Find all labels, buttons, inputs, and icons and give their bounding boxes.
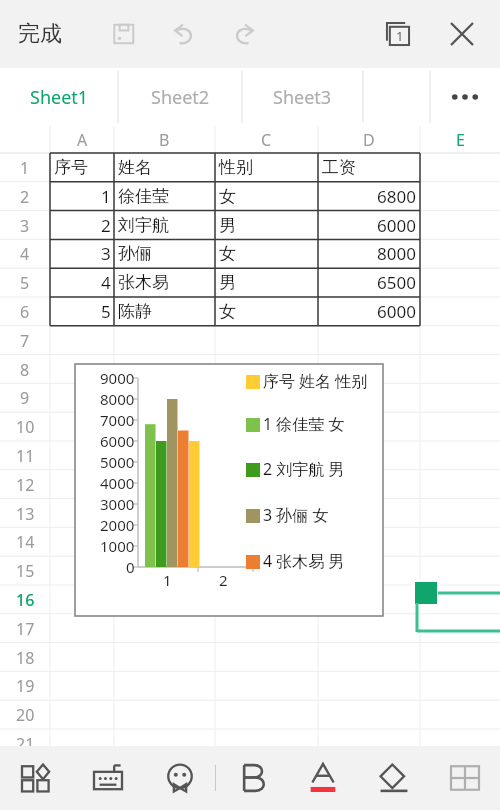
staticText: 工资 [322, 157, 356, 178]
staticText: 13 [16, 503, 35, 525]
staticText: 2000 [100, 515, 135, 535]
button[interactable]: 6500 [318, 268, 416, 297]
staticText: 0 [126, 557, 135, 577]
staticText: 5 [101, 300, 111, 323]
button[interactable]: 男 [219, 268, 316, 297]
staticText: 11 [16, 445, 35, 467]
button[interactable]: 工资 [322, 153, 418, 182]
button[interactable]: Font color [287, 746, 358, 810]
staticText: 完成 [18, 20, 62, 48]
button[interactable]: 女 [219, 239, 316, 268]
staticText: 男 [219, 272, 236, 293]
button[interactable]: 6800 [318, 182, 416, 211]
button[interactable]: Undo [162, 12, 206, 56]
button[interactable]: Keyboard [72, 746, 144, 810]
staticText: 女 [219, 186, 236, 207]
staticText: 20 [16, 704, 35, 726]
staticText: 6000 [377, 214, 416, 237]
staticText: 7 [20, 330, 30, 352]
staticText: 5000 [100, 452, 135, 472]
staticText: 18 [16, 647, 35, 669]
staticText: A [77, 129, 88, 151]
staticText: 1 徐佳莹 女 [263, 413, 345, 435]
staticText: C [261, 129, 272, 151]
staticText: 19 [16, 675, 35, 697]
staticText: 4 [101, 271, 111, 294]
staticText: Sheet1 [30, 85, 89, 110]
button[interactable]: 6000 [318, 211, 416, 240]
button[interactable]: Cell styles [0, 746, 72, 810]
staticText: 序号 [54, 157, 88, 178]
button[interactable]: Save [102, 12, 146, 56]
staticText: 5 [20, 272, 30, 294]
staticText: 10 [16, 416, 35, 438]
staticText: 8000 [100, 389, 135, 409]
button[interactable]: 张木易 [118, 268, 213, 297]
staticText: 6000 [377, 300, 416, 323]
staticText: Sheet3 [273, 85, 332, 110]
staticText: 4 [20, 243, 30, 265]
staticText: D [363, 129, 375, 151]
button[interactable]: 1 [50, 182, 111, 211]
staticText: 陈静 [118, 301, 152, 322]
button[interactable]: Sheet2 [118, 68, 242, 126]
staticText: 3 孙俪 女 [263, 504, 329, 526]
button[interactable]: 序号 [54, 153, 112, 182]
staticText: 2 [101, 214, 111, 237]
staticText: 8000 [377, 242, 416, 265]
staticText: 14 [16, 531, 35, 553]
button[interactable]: Insert [144, 746, 215, 810]
staticText: 8 [20, 359, 30, 381]
staticText: 孙俪 [118, 243, 152, 264]
button[interactable]: Redo [222, 12, 266, 56]
staticText: Sheet2 [151, 85, 210, 110]
button[interactable]: Open documents: 1 [374, 10, 422, 58]
button[interactable]: 8000 [318, 239, 416, 268]
staticText: 1 [101, 185, 111, 208]
button[interactable]: 女 [219, 182, 316, 211]
staticText: 序号 姓名 性别 [263, 370, 368, 392]
button[interactable]: 3 [50, 239, 111, 268]
button[interactable]: 刘宇航 [118, 211, 213, 240]
staticText: 9 [20, 387, 30, 409]
button[interactable]: Bold [216, 746, 287, 810]
staticText: 女 [219, 243, 236, 264]
staticText: 徐佳莹 [118, 186, 169, 207]
staticText: 6500 [377, 271, 416, 294]
button[interactable]: 性别 [219, 153, 316, 182]
staticText: 12 [16, 474, 35, 496]
staticText: 15 [16, 560, 35, 582]
staticText: 1 [396, 27, 404, 45]
button[interactable]: 5 [50, 297, 111, 326]
button[interactable]: 女 [219, 297, 316, 326]
button[interactable]: 4 [50, 268, 111, 297]
staticText: 16 [16, 589, 35, 611]
button[interactable]: Chart [75, 364, 383, 616]
staticText: 3000 [100, 494, 135, 514]
staticText: 张木易 [118, 272, 169, 293]
button[interactable]: Sheet1 [0, 68, 118, 126]
staticText: 21 [16, 733, 35, 755]
button[interactable]: 陈静 [118, 297, 213, 326]
button[interactable]: 姓名 [118, 153, 213, 182]
staticText: 3 [20, 215, 30, 237]
staticText: 女 [219, 301, 236, 322]
staticText: E [456, 129, 465, 151]
button[interactable]: Fill color [358, 746, 429, 810]
staticText: 1 [20, 157, 30, 179]
staticText: 2 [20, 186, 30, 208]
staticText: 6800 [377, 185, 416, 208]
button[interactable]: 徐佳莹 [118, 182, 213, 211]
button[interactable]: Close [438, 10, 486, 58]
button[interactable]: More [430, 68, 500, 126]
button[interactable]: 孙俪 [118, 239, 213, 268]
staticText: 2 刘宇航 男 [263, 458, 345, 480]
button[interactable]: 6000 [318, 297, 416, 326]
button[interactable]: 完成 [10, 12, 70, 56]
button[interactable]: Borders [429, 746, 500, 810]
button[interactable]: 男 [219, 211, 316, 240]
staticText: 3 [101, 242, 111, 265]
button[interactable]: Sheet3 [242, 68, 363, 126]
button[interactable]: 2 [50, 211, 111, 240]
